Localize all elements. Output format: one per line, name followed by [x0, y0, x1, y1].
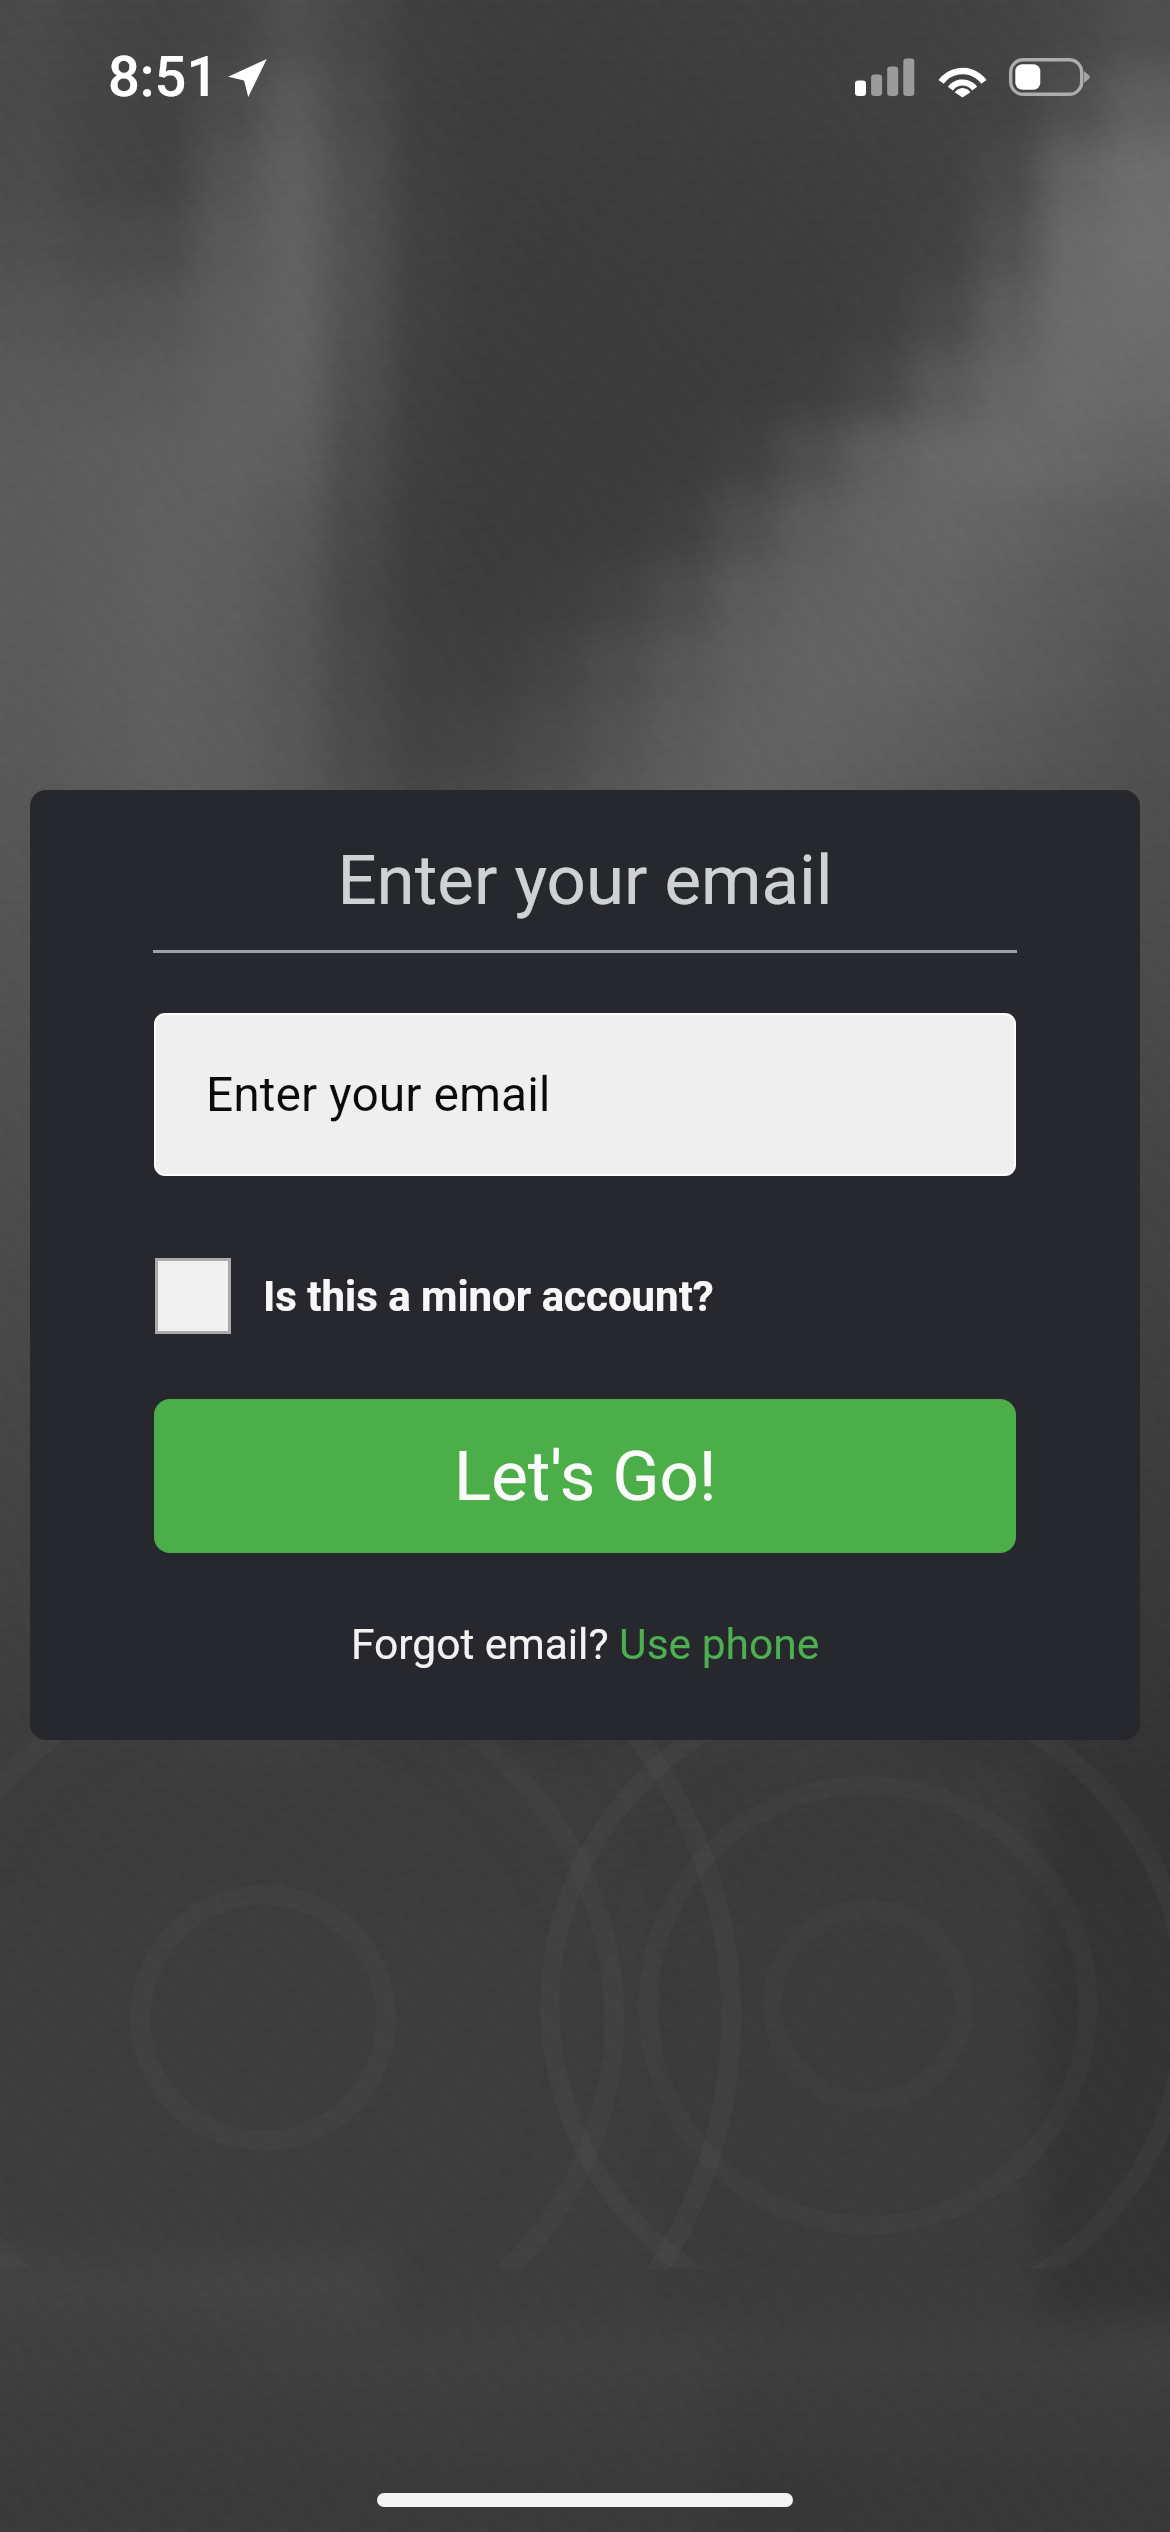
staticText: 8:51	[108, 44, 219, 110]
button[interactable]: Let's Go!	[154, 1399, 1016, 1553]
other: Wi-Fi	[934, 54, 990, 100]
button[interactable]: Is this a minor account?	[155, 1250, 775, 1342]
staticText: Enter your email	[337, 840, 833, 921]
other: Cellular signal	[855, 58, 915, 96]
staticText: Forgot email? Use phone	[351, 1620, 820, 1670]
button[interactable]: Forgot email? Use phone	[351, 1620, 820, 1670]
staticText: Let's Go!	[454, 1436, 717, 1517]
staticText: Is this a minor account?	[263, 1272, 714, 1321]
other: Location active	[226, 57, 268, 99]
button[interactable]: Enter your email	[156, 1015, 1014, 1174]
staticText: Enter your email	[206, 1066, 551, 1122]
other: Battery	[1009, 58, 1093, 96]
